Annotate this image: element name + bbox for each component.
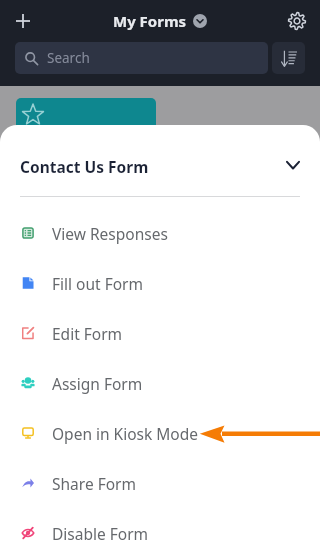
button[interactable]: My Forms bbox=[113, 11, 207, 31]
button[interactable]: Contact Us Form bbox=[0, 154, 320, 179]
button[interactable]: Sort bbox=[272, 42, 305, 74]
button[interactable]: Open in Kiosk Mode bbox=[0, 408, 320, 458]
staticText: View Responses bbox=[52, 223, 168, 244]
button[interactable]: View Responses bbox=[0, 208, 320, 258]
button[interactable]: Add form bbox=[8, 6, 38, 36]
staticText: Assign Form bbox=[52, 373, 143, 394]
button[interactable]: Assign Form bbox=[0, 358, 320, 408]
staticText: Contact Us Form bbox=[20, 156, 149, 177]
button[interactable]: Fill out Form bbox=[0, 258, 320, 308]
button[interactable] bbox=[16, 98, 156, 143]
button[interactable]: Settings bbox=[282, 6, 312, 36]
staticText: Search bbox=[47, 49, 90, 67]
button[interactable]: Search bbox=[15, 42, 268, 74]
staticText: Share Form bbox=[52, 473, 136, 494]
staticText: My Forms bbox=[113, 11, 187, 31]
button[interactable]: Edit Form bbox=[0, 308, 320, 358]
staticText: Edit Form bbox=[52, 323, 123, 344]
staticText: Disable Form bbox=[52, 523, 149, 544]
button[interactable]: Disable Form bbox=[0, 508, 320, 546]
staticText: Open in Kiosk Mode bbox=[52, 423, 199, 444]
button[interactable]: Share Form bbox=[0, 458, 320, 508]
staticText: Fill out Form bbox=[52, 273, 143, 294]
